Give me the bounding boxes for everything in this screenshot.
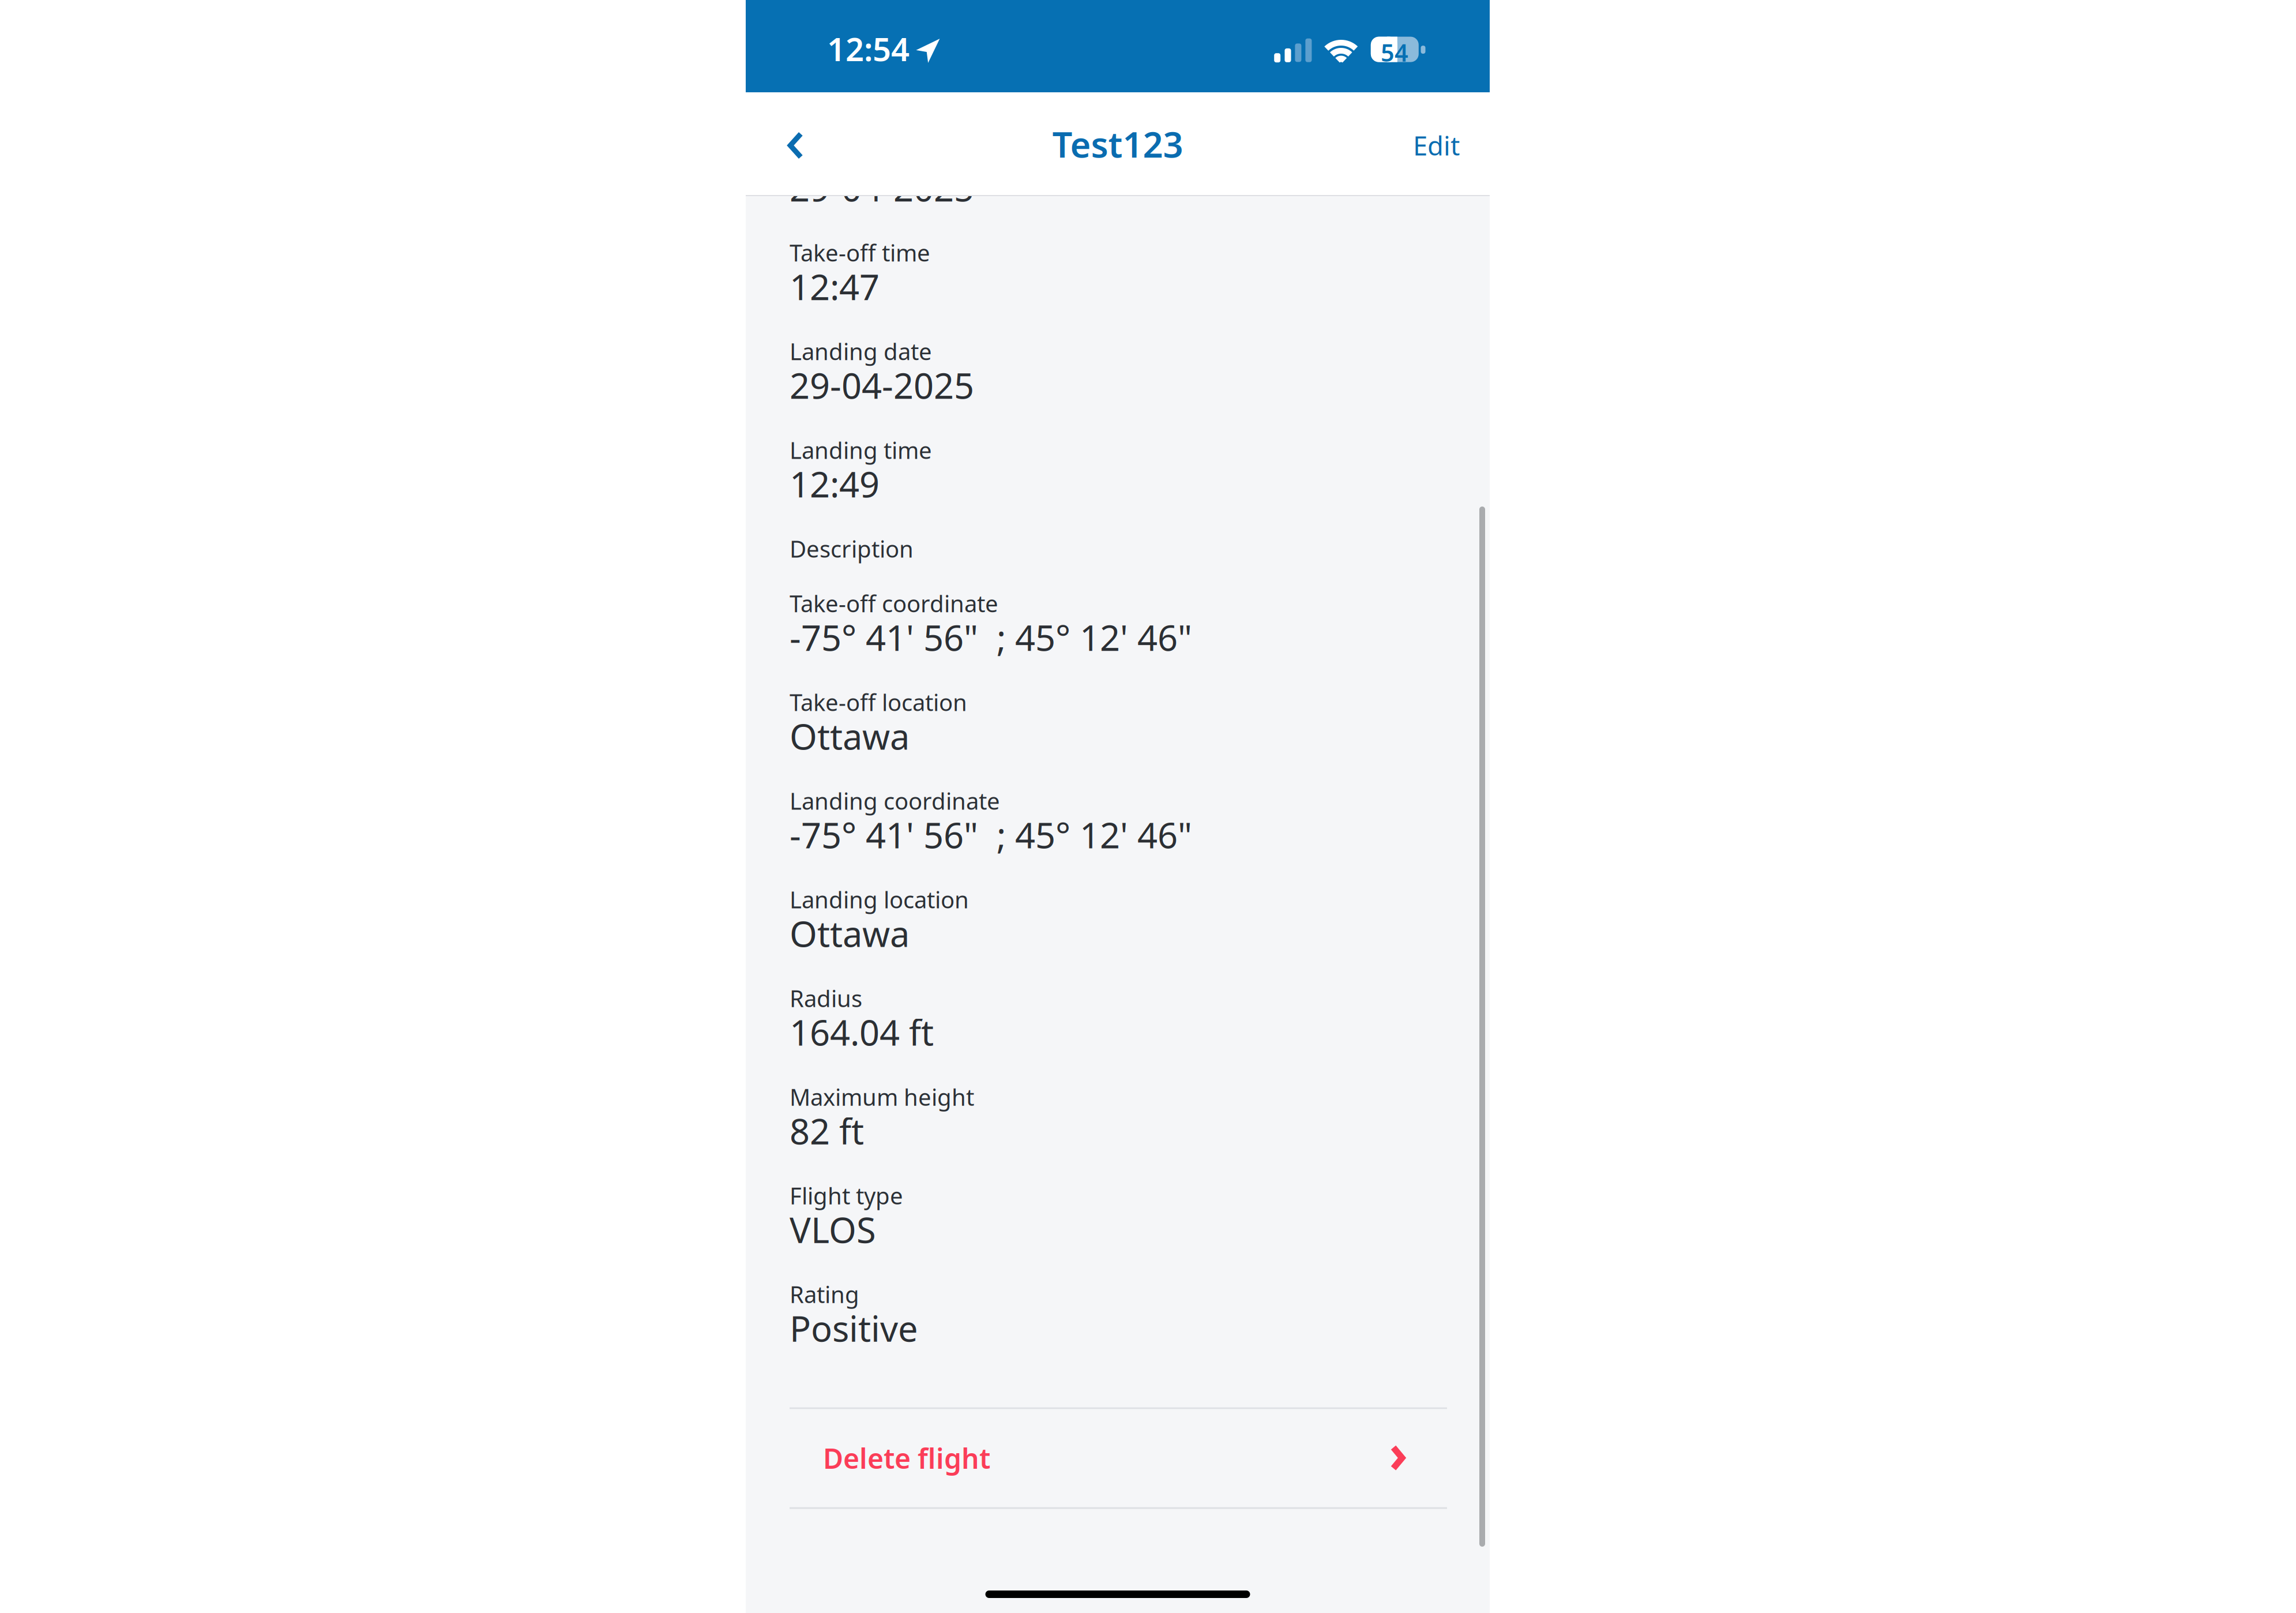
staticText: Ottawa [790, 910, 910, 957]
staticText: 29-04-2025 [790, 362, 974, 409]
staticText: 12:54 [827, 27, 910, 70]
button[interactable]: Back [769, 106, 833, 170]
staticText: -75° 41' 56" ; 45° 12' 46" [790, 811, 1192, 858]
staticText: Take-off date [790, 139, 930, 169]
staticText: Take-off location [790, 687, 967, 717]
staticText: Ottawa [790, 712, 910, 759]
staticText: Landing location [790, 884, 969, 915]
staticText: 29-04-2025 [790, 164, 974, 211]
staticText: 164.04 ft [790, 1008, 934, 1055]
staticText: VLOS [790, 1206, 876, 1253]
staticText: Take-off coordinate [790, 588, 998, 619]
staticText: 12:49 [790, 460, 880, 507]
staticText: Positive [790, 1305, 918, 1351]
staticText: Test123 [1052, 120, 1183, 167]
staticText: Take-off time [790, 237, 930, 268]
staticText: Edit [1413, 128, 1460, 163]
staticText: Flight type [790, 1180, 903, 1211]
button[interactable]: Delete flight [790, 1409, 1447, 1507]
staticText: 12:47 [790, 263, 880, 310]
staticText: Landing date [790, 336, 932, 367]
staticText: 82 ft [790, 1107, 864, 1154]
staticText: -75° 41' 56" ; 45° 12' 46" [790, 614, 1192, 661]
button[interactable]: Edit [1367, 114, 1460, 177]
staticText: 54 [1381, 37, 1408, 68]
staticText: Maximum height [790, 1081, 974, 1112]
staticText: Description [790, 533, 914, 564]
staticText: Delete flight [823, 1440, 990, 1476]
staticText: Landing coordinate [790, 785, 1000, 816]
staticText: Radius [790, 983, 862, 1013]
staticText: Rating [790, 1279, 859, 1309]
staticText: Landing time [790, 435, 932, 465]
